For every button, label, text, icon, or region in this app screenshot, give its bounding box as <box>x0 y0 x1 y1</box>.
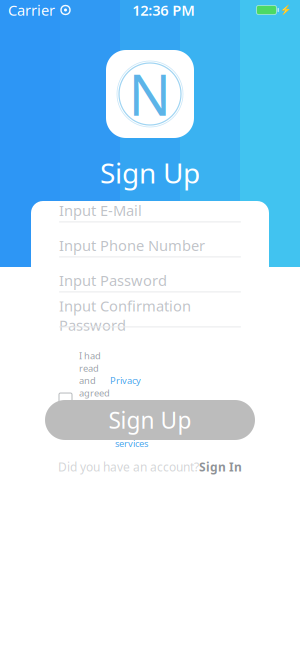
staticText: Input Password <box>59 271 167 290</box>
staticText: Sign In <box>199 459 242 475</box>
staticText: Sign Up <box>108 405 191 435</box>
staticText: I had read and agreed to the <box>79 349 110 411</box>
staticText: 12:36 PM <box>132 0 195 20</box>
button[interactable]: Did you have an account? <box>58 459 242 475</box>
staticText: Carrier <box>8 0 55 20</box>
staticText: ⚡ <box>280 5 292 15</box>
staticText: Input Confirmation Password <box>59 296 191 335</box>
button[interactable]: I had read and agreed to the <box>31 349 269 449</box>
staticText: & <box>104 425 115 437</box>
staticText: Input E-Mail <box>59 201 142 220</box>
staticText: Terms of services <box>115 412 148 450</box>
button[interactable]: Sign Up <box>45 400 255 440</box>
staticText: N <box>128 57 171 131</box>
staticText: Privacy <box>110 374 141 387</box>
staticText: Did you have an account? <box>58 459 199 475</box>
staticText: Input Phone Number <box>59 236 205 255</box>
staticText: Sign Up <box>100 154 200 191</box>
